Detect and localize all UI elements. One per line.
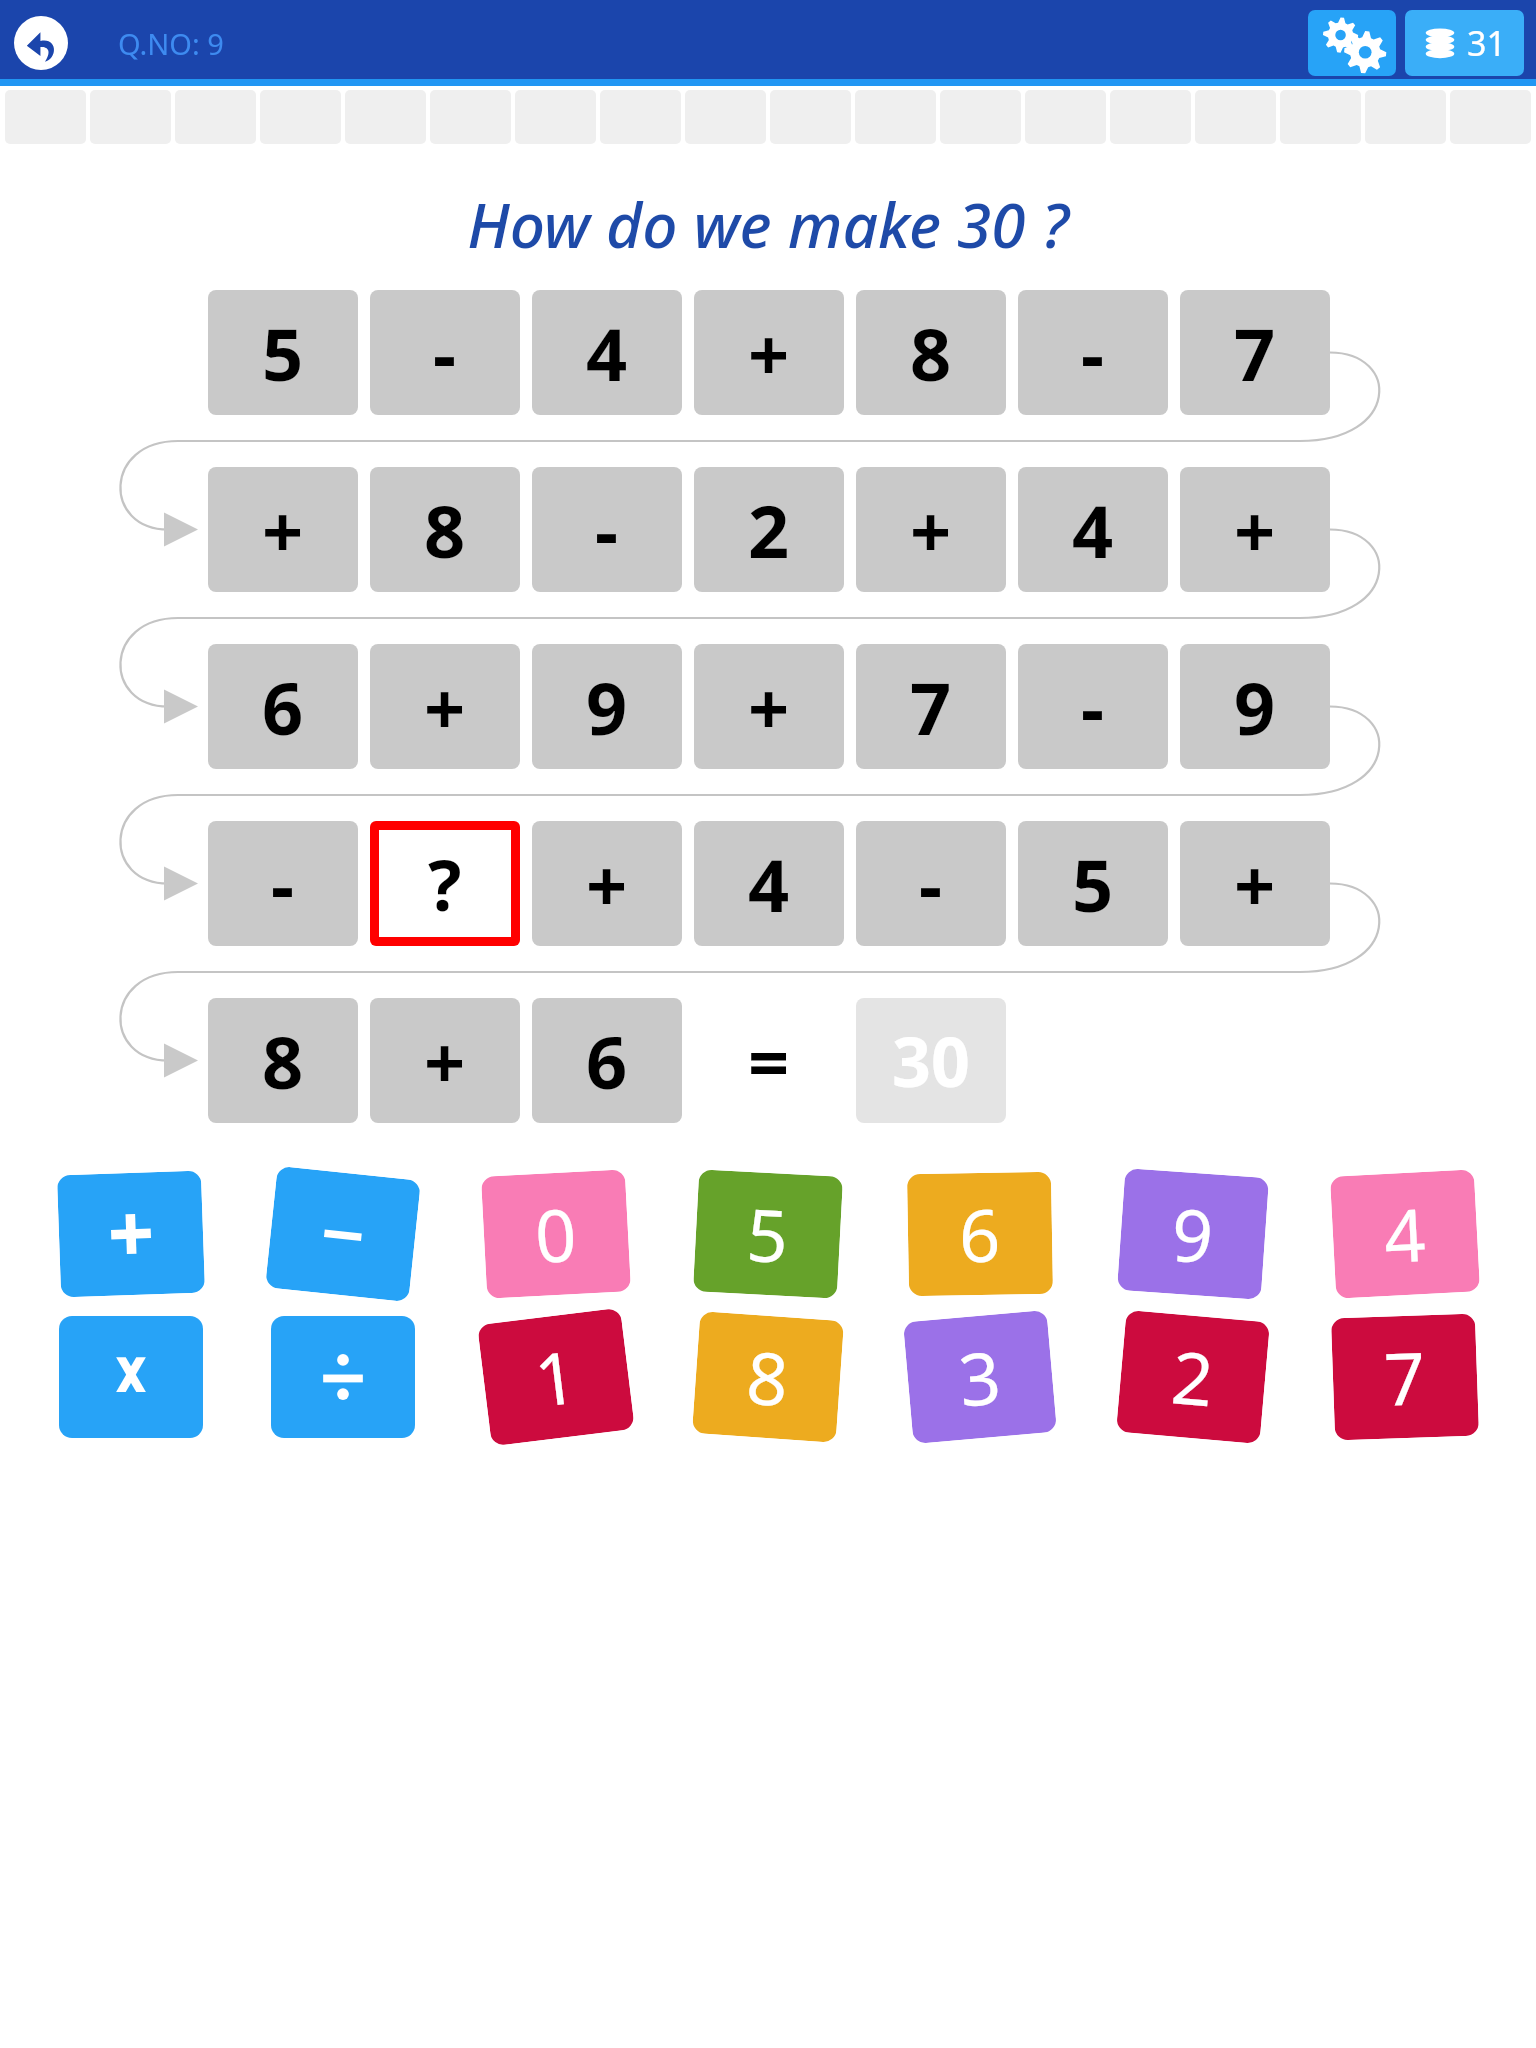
staticText: 5: [262, 304, 304, 402]
staticText: 9: [1234, 658, 1276, 756]
button[interactable]: 6: [907, 1172, 1053, 1296]
staticText: 2: [748, 481, 790, 579]
button[interactable]: -: [856, 821, 1006, 946]
staticText: =: [748, 1012, 790, 1110]
button[interactable]: 8: [856, 290, 1006, 415]
staticText: 9: [1169, 1184, 1217, 1284]
button[interactable]: 4: [532, 290, 682, 415]
staticText: -: [1081, 658, 1105, 756]
button[interactable]: Back: [14, 16, 68, 70]
staticText: 31: [1467, 20, 1506, 66]
button[interactable]: plus: [57, 1170, 205, 1297]
button[interactable]: 3: [903, 1310, 1057, 1444]
staticText: 0: [532, 1184, 580, 1284]
staticText: 4: [748, 835, 790, 933]
button[interactable]: 6: [532, 998, 682, 1123]
staticText: How do we make 30 ?: [467, 182, 1069, 266]
button[interactable]: 7: [1180, 290, 1330, 415]
staticText: 30: [892, 1014, 970, 1107]
staticText: 5: [1072, 835, 1114, 933]
button[interactable]: Settings: [1308, 10, 1396, 76]
button[interactable]: -: [1018, 290, 1168, 415]
staticText: 7: [1382, 1327, 1428, 1427]
staticText: +: [424, 658, 466, 756]
button[interactable]: 5: [693, 1169, 843, 1299]
staticText: 4: [1072, 481, 1114, 579]
staticText: 6: [586, 1012, 628, 1110]
staticText: ?: [428, 836, 462, 931]
staticText: 1: [529, 1326, 583, 1428]
button[interactable]: 4: [694, 821, 844, 946]
button[interactable]: +: [694, 290, 844, 415]
button[interactable]: -: [532, 467, 682, 592]
staticText: 2: [1168, 1326, 1218, 1428]
button[interactable]: 8: [692, 1311, 844, 1443]
button[interactable]: 8: [208, 998, 358, 1123]
button[interactable]: divide: [271, 1316, 415, 1438]
staticText: +: [424, 1012, 466, 1110]
button[interactable]: 1: [477, 1308, 635, 1446]
button[interactable]: 2: [694, 467, 844, 592]
staticText: 8: [262, 1012, 304, 1110]
staticText: 3: [955, 1326, 1005, 1428]
button[interactable]: ?: [379, 830, 511, 937]
staticText: 8: [910, 304, 952, 402]
staticText: +: [1234, 835, 1276, 933]
button[interactable]: 7: [856, 644, 1006, 769]
button[interactable]: 2: [1116, 1310, 1270, 1444]
staticText: 8: [424, 481, 466, 579]
button[interactable]: +: [370, 644, 520, 769]
button[interactable]: times: [59, 1316, 203, 1438]
staticText: 4: [586, 304, 628, 402]
staticText: 7: [1234, 304, 1276, 402]
button[interactable]: +: [856, 467, 1006, 592]
staticText: +: [586, 835, 628, 933]
staticText: 6: [958, 1185, 1002, 1283]
button[interactable]: 4: [1018, 467, 1168, 592]
staticText: +: [748, 304, 790, 402]
button[interactable]: 9: [1117, 1168, 1269, 1300]
button[interactable]: +: [208, 467, 358, 592]
staticText: +: [1234, 481, 1276, 579]
staticText: 4: [1381, 1184, 1429, 1284]
staticText: -: [1081, 304, 1105, 402]
button[interactable]: -: [1018, 644, 1168, 769]
button[interactable]: -: [370, 290, 520, 415]
button[interactable]: +: [1180, 467, 1330, 592]
staticText: 8: [744, 1327, 792, 1427]
button[interactable]: +: [532, 821, 682, 946]
button[interactable]: 8: [370, 467, 520, 592]
button[interactable]: 5: [208, 290, 358, 415]
staticText: +: [748, 658, 790, 756]
button[interactable]: 4: [1330, 1169, 1480, 1299]
button[interactable]: 9: [1180, 644, 1330, 769]
staticText: 6: [262, 658, 304, 756]
button[interactable]: 0: [481, 1169, 631, 1299]
staticText: +: [910, 481, 952, 579]
button[interactable]: 30: [856, 998, 1006, 1123]
staticText: -: [919, 835, 943, 933]
staticText: 7: [910, 658, 952, 756]
button[interactable]: +: [694, 644, 844, 769]
button[interactable]: minus: [265, 1166, 421, 1302]
button[interactable]: 7: [1331, 1313, 1479, 1440]
button[interactable]: 6: [208, 644, 358, 769]
staticText: 5: [744, 1184, 792, 1284]
staticText: -: [595, 481, 619, 579]
staticText: -: [271, 835, 295, 933]
staticText: +: [262, 481, 304, 579]
button[interactable]: 9: [532, 644, 682, 769]
staticText: Q.NO: 9: [118, 24, 224, 63]
button[interactable]: +: [1180, 821, 1330, 946]
staticText: -: [433, 304, 457, 402]
button[interactable]: -: [208, 821, 358, 946]
staticText: 9: [586, 658, 628, 756]
button[interactable]: +: [370, 998, 520, 1123]
button[interactable]: 31: [1405, 10, 1524, 76]
button[interactable]: 5: [1018, 821, 1168, 946]
